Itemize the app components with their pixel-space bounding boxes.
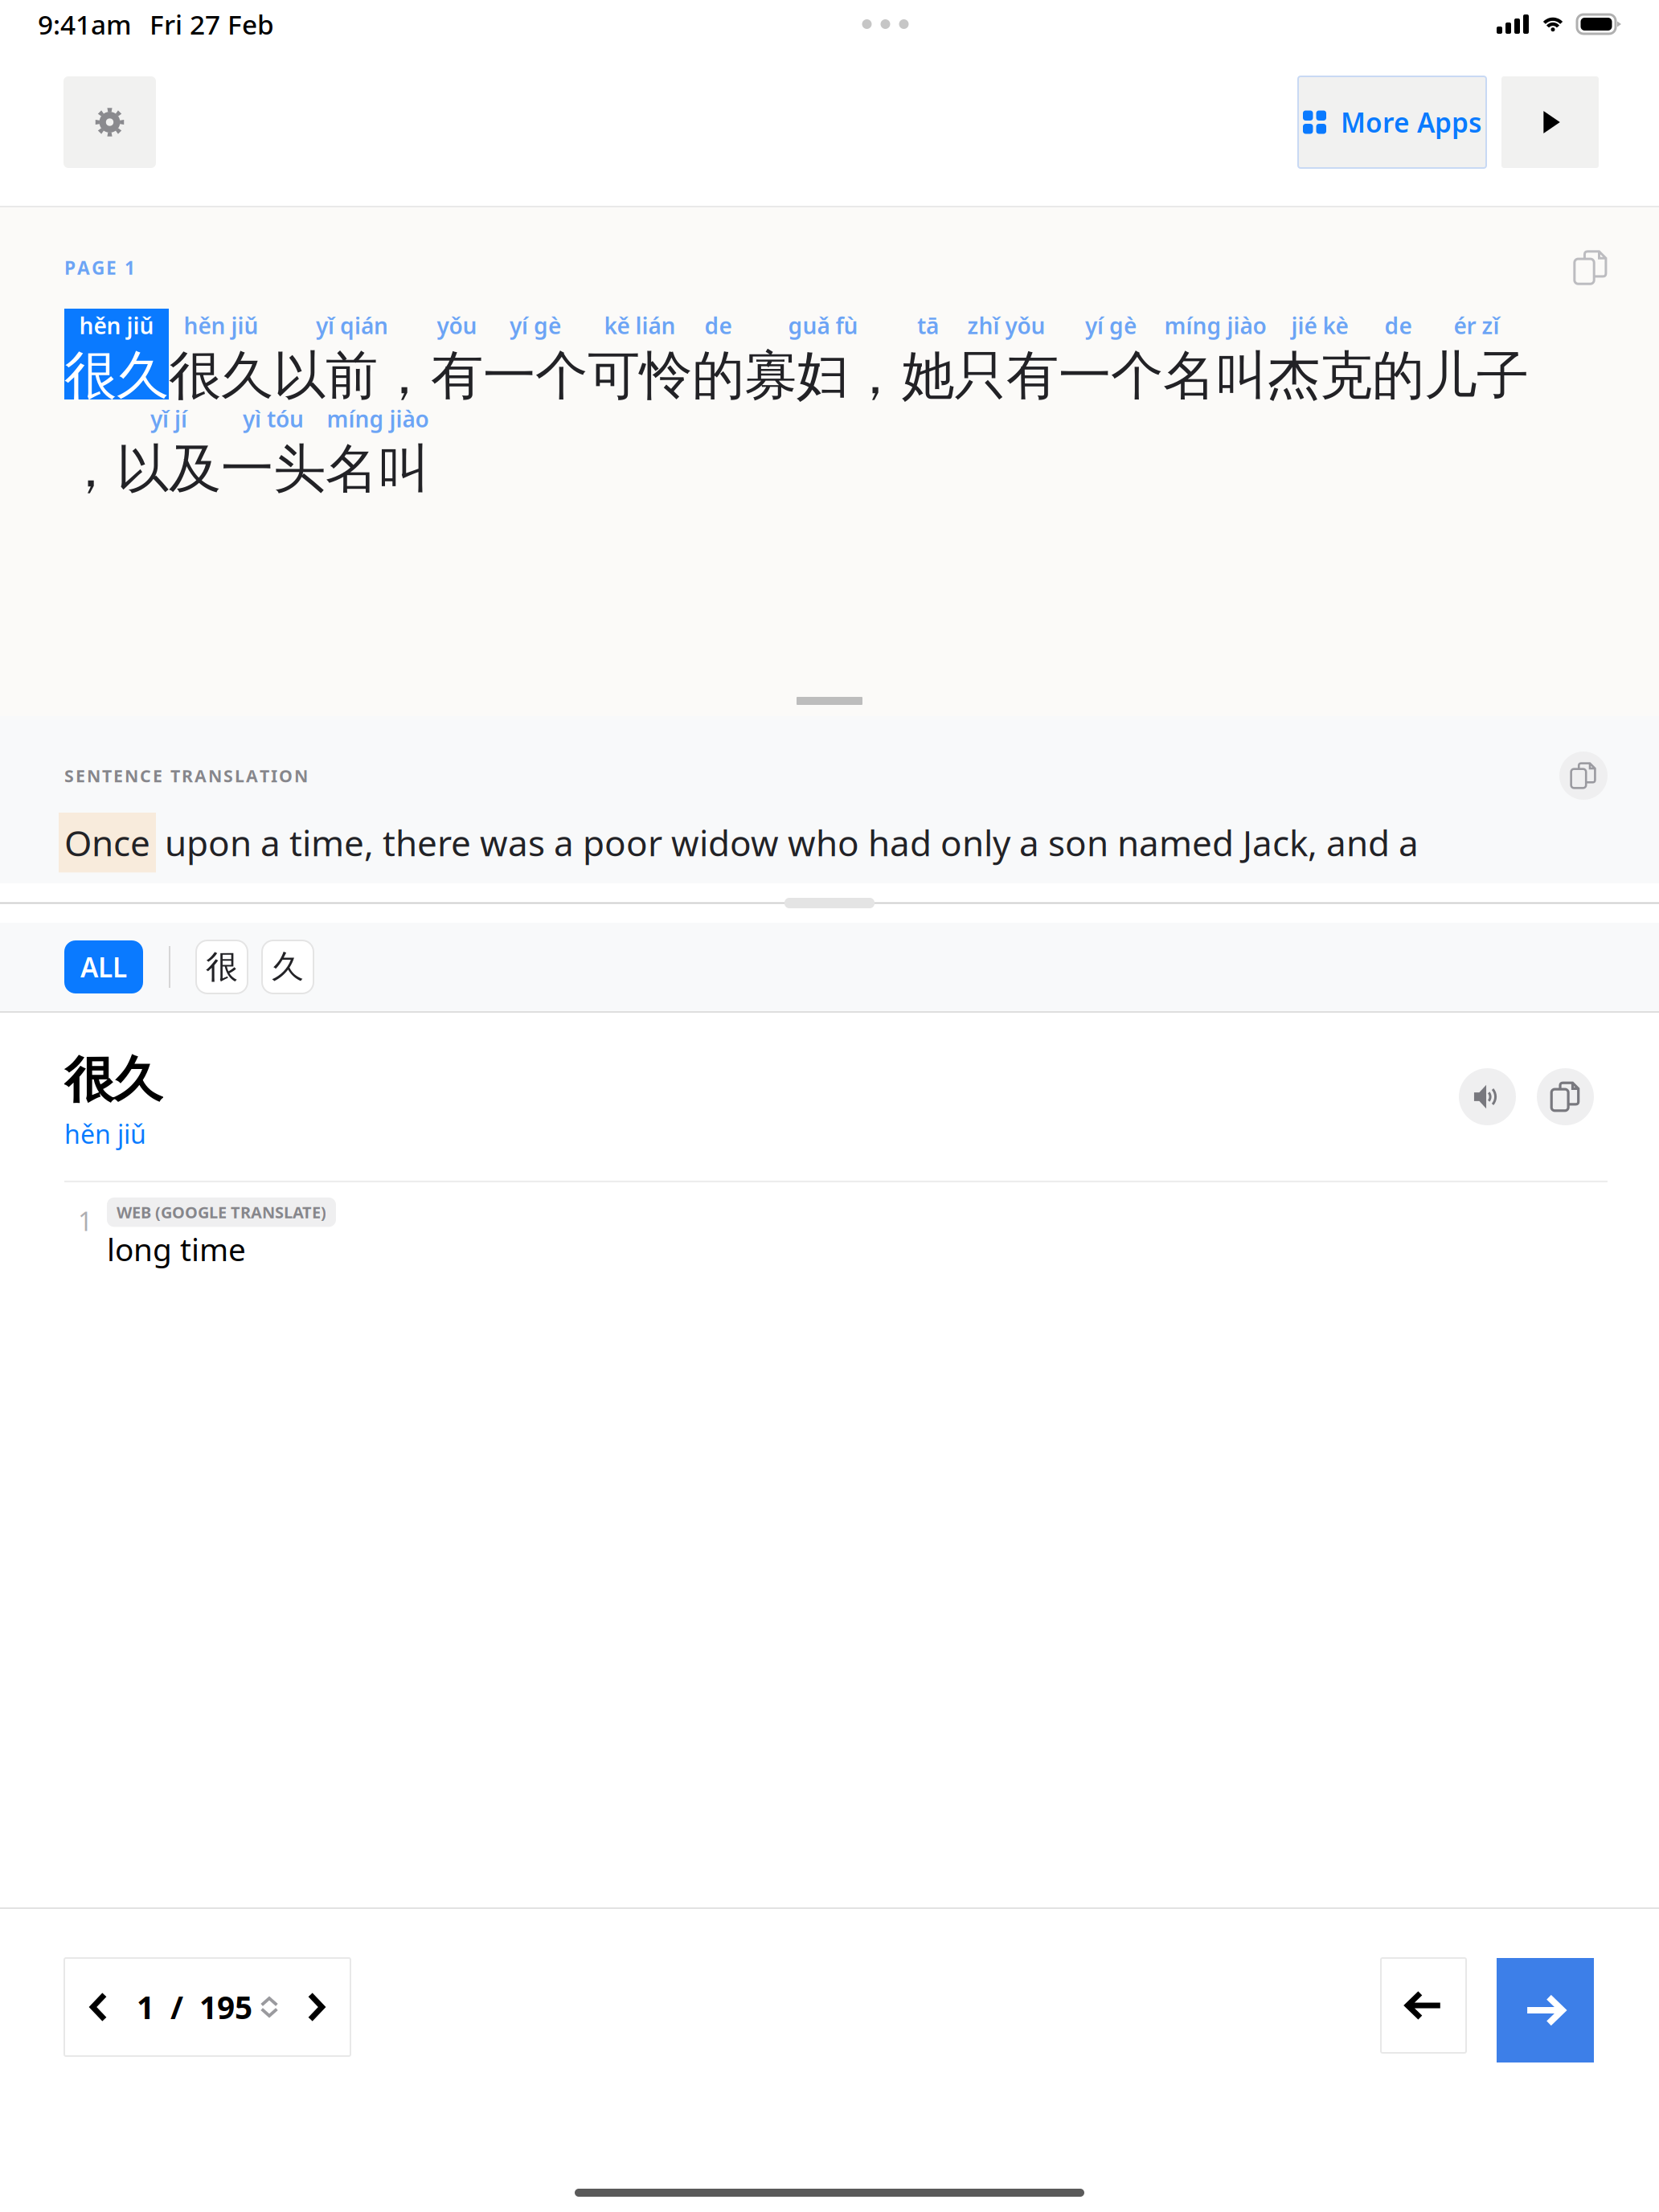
staticText: hěn jiǔ	[79, 311, 154, 340]
staticText: hěn jiǔ	[184, 311, 258, 340]
button[interactable]: ALL	[64, 940, 143, 993]
staticText: 名叫	[1163, 344, 1268, 408]
staticText: 以前，	[273, 344, 430, 408]
staticText: 很久	[64, 1050, 162, 1110]
staticText: 久	[272, 947, 304, 987]
staticText: Once	[64, 819, 150, 866]
staticText: ALL	[80, 949, 127, 985]
button[interactable]: 很	[196, 940, 248, 993]
button[interactable]: Settings	[63, 76, 156, 168]
staticText: yí gè	[1085, 311, 1137, 340]
staticText: guǎ fù	[788, 311, 858, 340]
staticText: 9:41am	[38, 6, 132, 42]
staticText: 一头	[221, 437, 326, 501]
staticText: 寡妇，	[744, 344, 901, 408]
button[interactable]: Forward	[1497, 1958, 1594, 2062]
staticText: long time	[107, 1228, 246, 1270]
button[interactable]: Previous page	[84, 1992, 114, 2022]
staticText: 1	[78, 1204, 92, 1238]
button[interactable]: Next page	[301, 1992, 331, 2022]
staticText: 一个	[483, 344, 588, 408]
staticText: de	[705, 311, 732, 340]
button[interactable]: Copy translation	[1559, 752, 1608, 800]
button[interactable]: Copy word	[1537, 1068, 1594, 1125]
staticText: hěn jiǔ	[64, 1117, 146, 1151]
staticText: tā	[917, 311, 939, 340]
staticText: upon a time, there was a poor widow who …	[156, 819, 1419, 866]
staticText: WEB (GOOGLE TRANSLATE)	[117, 1201, 326, 1223]
staticText: yǐ jí	[150, 404, 187, 434]
staticText: 有	[431, 344, 483, 408]
staticText: yǒu	[437, 311, 477, 340]
staticText: More Apps	[1341, 104, 1481, 140]
staticText: 杰克	[1268, 344, 1372, 408]
staticText: ，	[64, 437, 117, 501]
staticText: 的	[692, 344, 744, 408]
button[interactable]: Play	[1501, 76, 1599, 168]
staticText: P A G E 1	[64, 256, 135, 280]
staticText: yǐ qián	[316, 311, 388, 340]
staticText: jié kè	[1291, 311, 1348, 340]
staticText: yì tóu	[243, 404, 304, 434]
staticText: 她	[902, 344, 954, 408]
staticText: 1 / 195	[137, 1986, 252, 2028]
button[interactable]: Back	[1381, 1958, 1466, 2053]
staticText: 只有	[954, 344, 1059, 408]
staticText: 儿子	[1424, 344, 1529, 408]
button[interactable]: Play pronunciation	[1459, 1068, 1516, 1125]
staticText: kě lián	[604, 311, 676, 340]
button[interactable]: More Apps	[1298, 76, 1486, 168]
staticText: 名叫	[326, 437, 430, 501]
button[interactable]: 久	[262, 940, 313, 993]
staticText: 很	[206, 947, 238, 987]
staticText: de	[1385, 311, 1412, 340]
staticText: 一个	[1059, 344, 1163, 408]
staticText: míng jiào	[327, 404, 429, 434]
staticText: 的	[1372, 344, 1424, 408]
staticText: míng jiào	[1164, 311, 1266, 340]
staticText: Fri 27 Feb	[150, 6, 274, 42]
staticText: yí gè	[510, 311, 561, 340]
staticText: ér zǐ	[1454, 311, 1499, 340]
staticText: 以及	[117, 437, 221, 501]
staticText: S E N T E N C E T R A N S L A T I O N	[64, 764, 308, 787]
staticText: 可怜	[588, 344, 692, 408]
staticText: 很久	[64, 344, 169, 408]
staticText: zhǐ yǒu	[967, 311, 1045, 340]
staticText: 很久	[169, 344, 273, 408]
button[interactable]: Copy sentence	[1574, 251, 1608, 285]
